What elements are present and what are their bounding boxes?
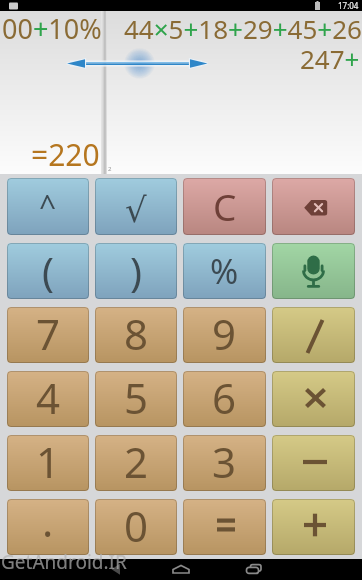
button[interactable]: Plus <box>272 499 355 555</box>
button[interactable]: 2 <box>95 435 177 491</box>
button[interactable]: Equals <box>183 499 266 555</box>
staticText: 9 <box>212 307 237 361</box>
button[interactable]: 6 <box>183 371 266 427</box>
button[interactable]: Minus <box>272 435 355 491</box>
button[interactable]: 3 <box>183 435 266 491</box>
button[interactable]: 0 <box>95 499 177 555</box>
button[interactable]: Divide <box>272 307 355 363</box>
button[interactable]: . <box>7 499 89 555</box>
staticText: ( <box>42 244 54 298</box>
staticText: 2 <box>108 165 112 173</box>
staticText: 1 <box>36 435 61 489</box>
staticText: 5 <box>124 371 149 425</box>
button[interactable]: √ <box>95 178 177 235</box>
staticText: =220 <box>31 134 100 175</box>
button[interactable]: Voice input <box>272 243 355 299</box>
staticText: 00+10% <box>2 10 102 47</box>
button[interactable]: 8 <box>95 307 177 363</box>
staticText: C <box>213 181 237 231</box>
staticText: 44×5+18+29+45+26 <box>124 11 362 46</box>
staticText: 247+ <box>300 41 360 76</box>
staticText: GetAndroid.IR <box>1 549 127 575</box>
button[interactable]: 9 <box>183 307 266 363</box>
staticText: 17:04 <box>338 0 359 11</box>
button[interactable]: Back <box>0 559 362 580</box>
button[interactable]: ( <box>7 243 89 299</box>
staticText: 2 <box>124 435 149 489</box>
button[interactable]: Backspace <box>272 178 355 235</box>
staticText: % <box>210 248 239 294</box>
staticText: . <box>42 499 54 548</box>
staticText: ^ <box>39 185 57 226</box>
staticText: 6 <box>212 371 237 425</box>
button[interactable]: ^ <box>7 178 89 235</box>
button[interactable]: 5 <box>95 371 177 427</box>
staticText: 7 <box>36 307 61 361</box>
button[interactable]: Multiply <box>272 371 355 427</box>
button[interactable]: ) <box>95 243 177 299</box>
button[interactable]: C <box>183 178 266 235</box>
staticText: ) <box>130 244 142 298</box>
staticText: 3 <box>212 435 237 489</box>
staticText: 4 <box>36 371 61 425</box>
button[interactable]: 7 <box>7 307 89 363</box>
button[interactable]: 4 <box>7 371 89 427</box>
staticText: √ <box>125 190 147 230</box>
staticText: 8 <box>124 307 149 361</box>
staticText: 0 <box>124 499 149 553</box>
button[interactable]: % <box>183 243 266 299</box>
button[interactable]: 1 <box>7 435 89 491</box>
